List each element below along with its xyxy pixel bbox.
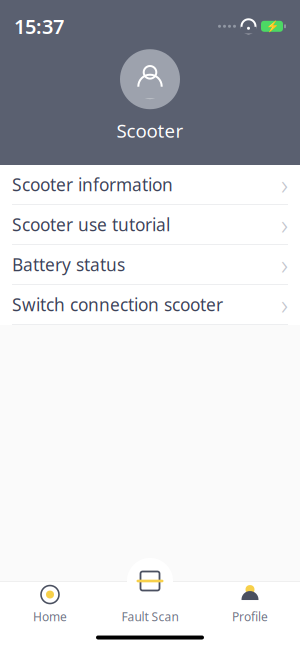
button[interactable]: Fault Scan (127, 558, 173, 604)
staticText: Switch connection scooter (12, 293, 223, 316)
button[interactable]: Scooter use tutorial (0, 205, 300, 245)
staticText: Scooter use tutorial (12, 213, 170, 236)
staticText: › (281, 247, 288, 282)
staticText: › (281, 207, 288, 242)
staticText: Battery status (12, 253, 125, 276)
staticText: 15:37 (14, 13, 64, 40)
staticText: Fault Scan (121, 608, 178, 624)
button[interactable]: Battery status (0, 245, 300, 285)
staticText: › (281, 287, 288, 322)
button[interactable]: Home (0, 582, 100, 626)
staticText: ⚡ (265, 20, 278, 32)
button[interactable]: Switch connection scooter (0, 285, 300, 325)
button[interactable]: Profile (200, 582, 300, 626)
staticText: Home (33, 608, 67, 624)
button[interactable]: Fault Scan (100, 582, 200, 626)
staticText: Scooter information (12, 173, 173, 196)
staticText: Scooter (116, 118, 183, 143)
button[interactable]: Scooter information (0, 165, 300, 205)
staticText: › (281, 167, 288, 202)
staticText: Profile (232, 608, 268, 624)
